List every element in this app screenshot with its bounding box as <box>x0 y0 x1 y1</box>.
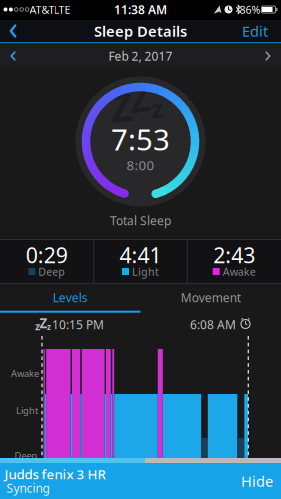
staticText: Movement <box>181 289 241 305</box>
staticText: Edit <box>242 21 268 41</box>
staticText: Awake <box>11 367 39 380</box>
staticText: Judds fenix 3 HR <box>4 465 105 483</box>
staticText: LTE <box>53 2 70 17</box>
staticText: 10:15 PM <box>52 316 104 332</box>
staticText: z <box>35 319 40 333</box>
button[interactable] <box>2 19 24 42</box>
staticText: 8:00 <box>126 156 154 174</box>
button[interactable] <box>2 43 24 68</box>
staticText: Awake <box>223 264 256 279</box>
staticText: 11:38 AM <box>114 1 167 17</box>
staticText: 7:53 <box>111 119 170 158</box>
staticText: Light <box>132 264 159 279</box>
button[interactable]: Levels <box>0 283 140 311</box>
button[interactable]: Edit <box>235 19 275 42</box>
staticText: 4:41 <box>119 241 161 269</box>
staticText: 6:08 AM <box>190 316 236 332</box>
staticText: Syncing <box>6 480 49 496</box>
staticText: Hide <box>241 471 273 491</box>
staticText: Z <box>129 74 150 122</box>
staticText: z <box>151 91 163 125</box>
staticText: 0:29 <box>26 241 68 269</box>
staticText: Feb 2, 2017 <box>108 48 172 64</box>
staticText: Levels <box>53 289 88 305</box>
staticText: 86% <box>239 2 260 17</box>
staticText: Total Sleep <box>110 212 171 228</box>
staticText: Z <box>110 81 132 133</box>
staticText: Light <box>16 404 38 417</box>
button[interactable]: Movement <box>141 283 281 311</box>
staticText: AT&T <box>29 2 54 17</box>
staticText: Deep <box>14 449 37 462</box>
staticText: 2:43 <box>213 241 255 269</box>
staticText: Sleep Details <box>94 21 187 41</box>
staticText: z <box>47 322 51 332</box>
button[interactable]: Hide <box>235 463 279 499</box>
button[interactable] <box>257 43 279 68</box>
staticText: Deep <box>38 264 65 279</box>
staticText: Z <box>39 314 47 332</box>
